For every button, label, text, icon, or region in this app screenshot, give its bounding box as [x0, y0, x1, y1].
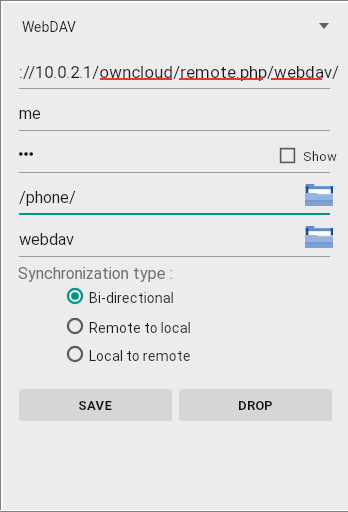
- staticText: DROP: [238, 398, 273, 413]
- staticText: Show: [303, 149, 337, 164]
- button[interactable]: Remote to local: [60, 313, 295, 339]
- button[interactable]: SAVE: [19, 389, 172, 421]
- staticText: Bi-directional: [89, 290, 174, 306]
- button[interactable]: Bi-directional: [60, 283, 295, 309]
- button[interactable]: Browse folder: [305, 184, 339, 214]
- button[interactable]: ://10.0.2.1/owncloud/remote.php/webdav/: [19, 62, 348, 82]
- button[interactable]: Show: [276, 143, 342, 169]
- button[interactable]: Browse folder: [305, 226, 339, 256]
- staticText: Local to remote: [89, 348, 191, 364]
- button[interactable]: DROP: [179, 389, 332, 421]
- button[interactable]: /phone/: [19, 188, 76, 207]
- staticText: SAVE: [78, 398, 113, 413]
- staticText: WebDAV: [22, 19, 77, 35]
- button[interactable]: webdav: [19, 230, 74, 249]
- staticText: Synchronization type :: [18, 264, 173, 283]
- button[interactable]: WebDAV: [3, 4, 343, 42]
- button[interactable]: me: [19, 104, 41, 123]
- staticText: Remote to local: [89, 320, 191, 336]
- button[interactable]: Local to remote: [60, 341, 295, 367]
